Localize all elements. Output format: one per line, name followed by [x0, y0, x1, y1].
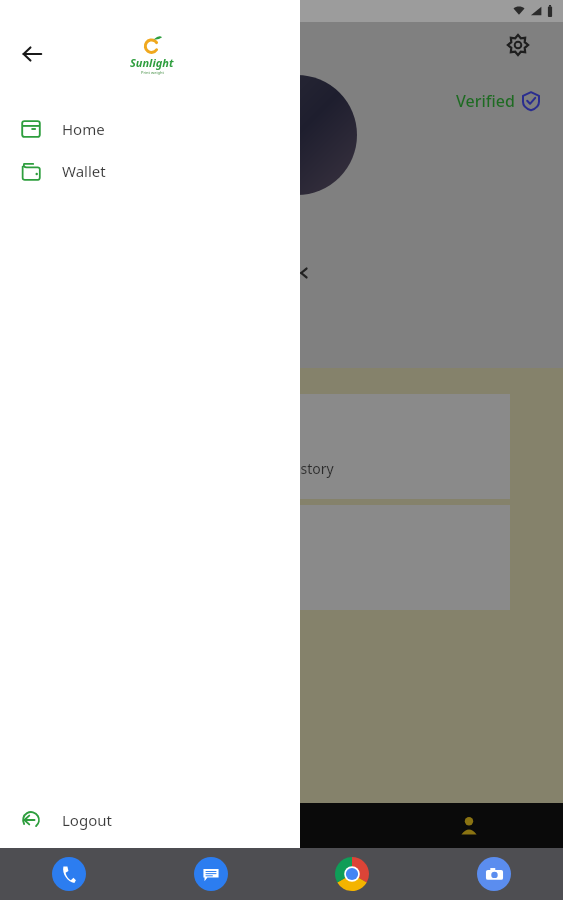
button[interactable]: Notifications tab [187, 803, 375, 848]
staticText: Delivers History [230, 459, 334, 478]
button[interactable]: Phone [52, 857, 86, 891]
staticText: Home [62, 119, 105, 139]
staticText: Wallet [62, 161, 106, 181]
button[interactable]: Profile [375, 803, 563, 848]
button[interactable]: Wallet [0, 150, 300, 192]
staticText: Print weight [141, 70, 164, 75]
button[interactable]: Settings [501, 28, 535, 62]
button[interactable]: Delivers History [54, 394, 510, 499]
button[interactable]: Chrome [335, 857, 369, 891]
staticText: Verified [456, 90, 515, 112]
staticText: Sunlight [130, 55, 174, 70]
button[interactable]: Messages [194, 857, 228, 891]
button[interactable]: Home [0, 108, 300, 150]
button[interactable]: Notifications [0, 803, 187, 848]
button[interactable]: Back [14, 36, 50, 72]
button[interactable]: Camera [477, 857, 511, 891]
button[interactable]: Logout [0, 806, 300, 834]
staticText: Logout [62, 810, 112, 830]
button[interactable]: Bank [54, 505, 510, 610]
